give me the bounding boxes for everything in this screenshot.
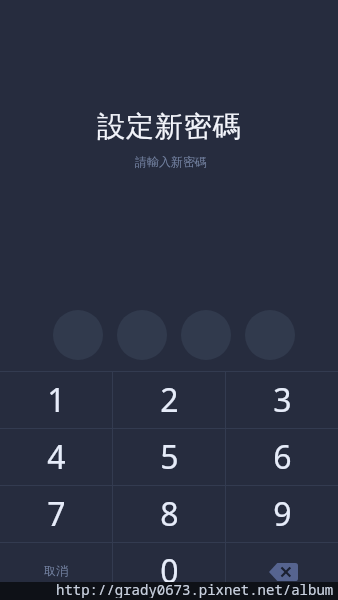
- button[interactable]: 7: [0, 486, 112, 542]
- button[interactable]: 1: [0, 372, 112, 428]
- button[interactable]: 2: [113, 372, 225, 428]
- staticText: 3: [273, 378, 292, 422]
- staticText: 0: [160, 549, 179, 593]
- staticText: 1: [47, 378, 66, 422]
- staticText: 5: [160, 435, 179, 479]
- staticText: 設定新密碼: [97, 109, 242, 144]
- staticText: 2: [160, 378, 179, 422]
- button[interactable]: Delete: [226, 543, 338, 599]
- button[interactable]: 5: [113, 429, 225, 485]
- staticText: http://grady0673.pixnet.net/album: [56, 580, 334, 598]
- button[interactable]: 6: [226, 429, 338, 485]
- staticText: 取消: [44, 563, 68, 578]
- button[interactable]: 4: [0, 429, 112, 485]
- button[interactable]: 9: [226, 486, 338, 542]
- button[interactable]: 3: [226, 372, 338, 428]
- staticText: 4: [47, 435, 66, 479]
- staticText: 9: [273, 492, 292, 536]
- staticText: 6: [273, 435, 292, 479]
- button[interactable]: 取消: [0, 543, 112, 599]
- button[interactable]: 0: [113, 543, 225, 599]
- staticText: 8: [160, 492, 179, 536]
- staticText: 7: [47, 492, 66, 536]
- button[interactable]: 8: [113, 486, 225, 542]
- staticText: 請輸入新密碼: [135, 154, 207, 169]
